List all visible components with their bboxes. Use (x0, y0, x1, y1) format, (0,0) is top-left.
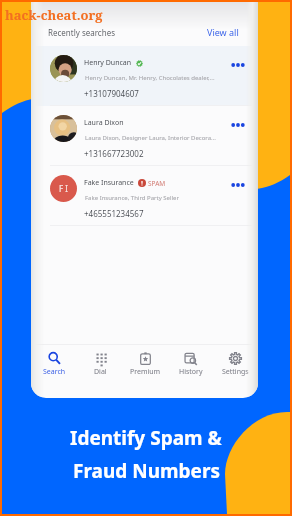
staticText: Premium (130, 367, 161, 377)
button[interactable]: Henry Duncan (31, 46, 258, 106)
staticText: Search (43, 367, 66, 377)
staticText: F I (59, 183, 68, 194)
button[interactable]: F I (31, 166, 258, 226)
button[interactable]: View all (205, 24, 241, 40)
staticText: Henry Duncan (84, 58, 132, 68)
staticText: +465551234567 (84, 208, 144, 219)
button[interactable]: More options (229, 116, 247, 134)
staticText: +131667723002 (84, 148, 144, 159)
staticText: Henry Duncan, Mr. Henry, Chocolates deal… (85, 74, 215, 82)
button[interactable]: Laura Dixon (31, 106, 258, 166)
staticText: Laura Dixon (84, 118, 124, 128)
staticText: Fake Insurance (84, 178, 134, 188)
button[interactable]: Dial (77, 345, 123, 377)
staticText: Fake Insurance, Third Party Seller (85, 194, 179, 202)
button[interactable]: Settings (213, 345, 258, 377)
staticText: Identify Spam & (70, 425, 222, 451)
button[interactable]: Search (31, 345, 77, 377)
staticText: SPAM (148, 179, 166, 188)
button[interactable]: History (168, 345, 213, 377)
staticText: Laura Dixon, Designer Laura, Interior De… (85, 134, 216, 142)
staticText: Settings (222, 367, 249, 377)
staticText: Fraud Numbers (73, 458, 220, 484)
staticText: History (179, 367, 203, 377)
staticText: +13107904607 (84, 88, 139, 99)
button[interactable]: Premium (123, 345, 168, 377)
staticText: hack-cheat.org (5, 6, 103, 24)
staticText: Dial (94, 367, 107, 377)
button[interactable]: More options (229, 176, 247, 194)
staticText: Recently searches (48, 27, 115, 38)
staticText: View all (207, 26, 239, 38)
button[interactable]: More options (229, 56, 247, 74)
